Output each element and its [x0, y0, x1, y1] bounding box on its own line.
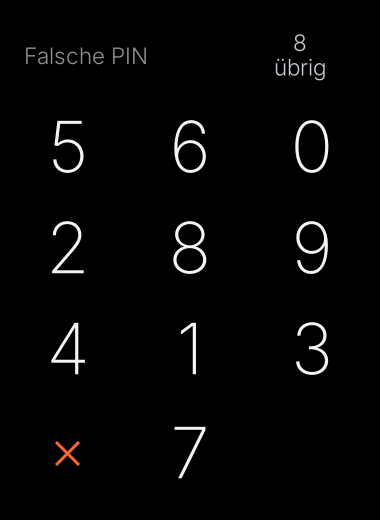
- staticText: übrig: [274, 53, 326, 81]
- staticText: 5: [47, 104, 88, 189]
- button[interactable]: 6: [129, 96, 251, 197]
- staticText: 9: [291, 205, 332, 290]
- staticText: 1: [176, 306, 203, 391]
- staticText: 0: [290, 104, 333, 189]
- button[interactable]: 3: [251, 298, 373, 399]
- button[interactable]: 8: [129, 197, 251, 298]
- button[interactable]: 5: [7, 96, 129, 197]
- staticText: 7: [170, 410, 209, 495]
- button[interactable]: 1: [129, 298, 251, 399]
- button[interactable]: 7: [129, 402, 251, 503]
- staticText: 8: [168, 205, 211, 290]
- staticText: 2: [46, 205, 90, 290]
- button[interactable]: 4: [7, 298, 129, 399]
- staticText: 3: [291, 306, 333, 391]
- staticText: 6: [169, 104, 210, 189]
- button[interactable]: Delete: [7, 402, 129, 503]
- button[interactable]: 9: [251, 197, 373, 298]
- staticText: 4: [46, 306, 89, 391]
- staticText: 8: [293, 29, 307, 56]
- button[interactable]: 0: [251, 96, 373, 197]
- staticText: Falsche PIN: [24, 42, 148, 69]
- button[interactable]: 2: [7, 197, 129, 298]
